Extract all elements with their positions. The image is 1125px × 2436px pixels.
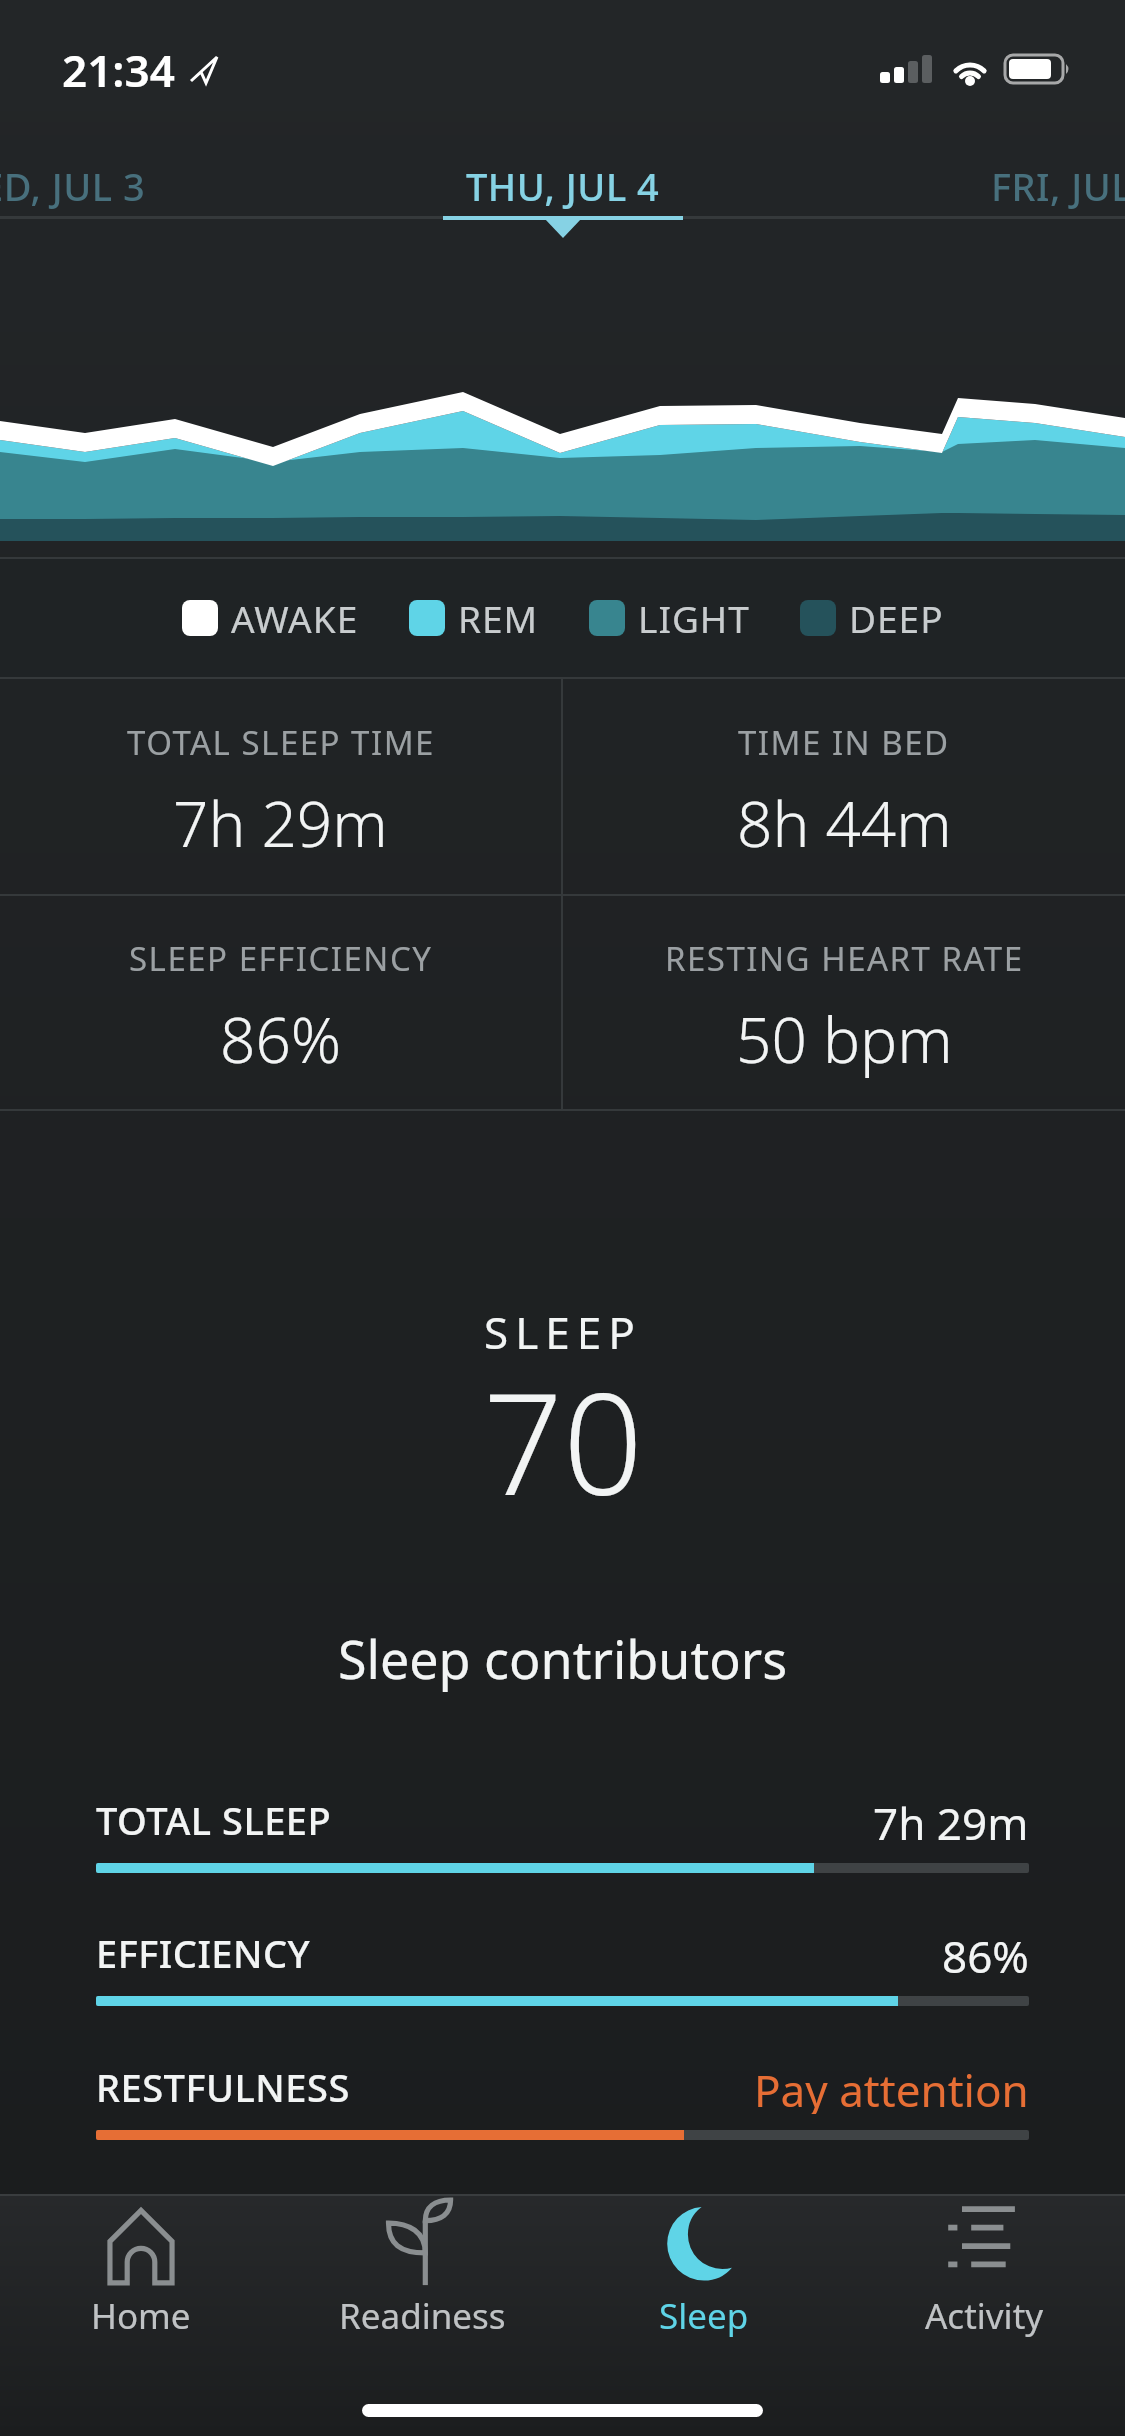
button[interactable]: SLEEP EFFICIENCY — [0, 908, 561, 1109]
staticText: TIME IN BED — [738, 720, 950, 765]
staticText: SLEEP EFFICIENCY — [129, 936, 433, 981]
staticText: REM — [458, 593, 539, 643]
staticText: 7h 29m — [173, 781, 388, 865]
staticText: EFFICIENCY — [96, 1927, 311, 1979]
staticText: SLEEP — [484, 1302, 642, 1362]
button[interactable]: TIME IN BED — [563, 691, 1125, 894]
staticText: 7h 29m — [873, 1793, 1029, 1847]
staticText: Readiness — [339, 2292, 506, 2340]
staticText: Sleep — [659, 2292, 749, 2340]
staticText: Activity — [925, 2292, 1044, 2340]
button[interactable]: RESTFULNESS — [96, 2060, 1029, 2140]
staticText: Pay attention — [754, 2060, 1029, 2114]
staticText: 21:34 — [62, 40, 175, 100]
staticText: TOTAL SLEEP TIME — [127, 720, 435, 765]
staticText: RESTFULNESS — [96, 2061, 350, 2113]
staticText: 70 — [483, 1345, 643, 1536]
staticText: RESTING HEART RATE — [665, 936, 1024, 981]
button[interactable]: Activity — [844, 2196, 1125, 2436]
button[interactable]: Home — [0, 2196, 282, 2436]
button[interactable]: FRI, JUL — [991, 160, 1125, 212]
button[interactable]: TOTAL SLEEP TIME — [0, 691, 561, 894]
staticText: Sleep contributors — [338, 1623, 788, 1694]
staticText: 86% — [942, 1926, 1029, 1980]
button[interactable]: RESTING HEART RATE — [563, 908, 1125, 1109]
button[interactable]: ED, JUL 3 — [0, 160, 146, 212]
button[interactable]: THU, JUL 4 — [466, 160, 660, 212]
staticText: AWAKE — [231, 593, 359, 643]
staticText: 8h 44m — [737, 781, 952, 865]
button[interactable]: EFFICIENCY — [96, 1926, 1029, 2006]
staticText: 86% — [220, 997, 342, 1081]
button[interactable]: Sleep — [563, 2196, 844, 2436]
staticText: Home — [91, 2292, 191, 2340]
staticText: 50 bpm — [736, 997, 953, 1081]
button[interactable]: Readiness — [282, 2196, 563, 2436]
staticText: LIGHT — [638, 593, 750, 643]
staticText: TOTAL SLEEP — [96, 1794, 332, 1846]
button[interactable]: TOTAL SLEEP — [96, 1793, 1029, 1873]
staticText: DEEP — [849, 593, 944, 643]
